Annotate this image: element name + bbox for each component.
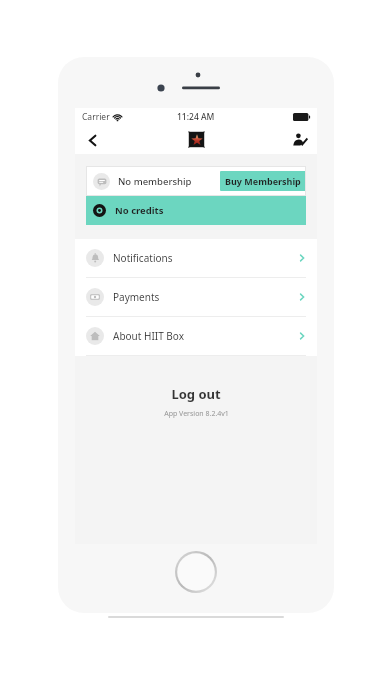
button[interactable]: Back bbox=[79, 127, 105, 153]
staticText: App Version 8.2.4v1 bbox=[164, 409, 229, 419]
staticText: About HIIT Box bbox=[113, 329, 184, 343]
button[interactable]: Edit profile bbox=[287, 127, 313, 153]
staticText: Notifications bbox=[113, 251, 173, 265]
button[interactable]: No membership bbox=[86, 166, 306, 196]
staticText: 11:24 AM bbox=[177, 111, 215, 123]
staticText: Carrier bbox=[82, 111, 110, 123]
button[interactable]: About HIIT Box bbox=[75, 317, 317, 355]
button[interactable]: Notifications bbox=[75, 239, 317, 277]
button[interactable]: Buy Membership bbox=[220, 171, 306, 191]
staticText: Payments bbox=[113, 290, 160, 304]
staticText: Buy Membership bbox=[225, 175, 301, 187]
staticText: No credits bbox=[115, 204, 164, 217]
staticText: Log out bbox=[171, 385, 221, 403]
button[interactable]: Payments bbox=[75, 278, 317, 316]
button[interactable]: No credits bbox=[86, 196, 306, 225]
button[interactable]: HIIT Box logo bbox=[188, 131, 205, 148]
staticText: No membership bbox=[118, 175, 192, 188]
button[interactable]: Log out bbox=[151, 382, 241, 406]
